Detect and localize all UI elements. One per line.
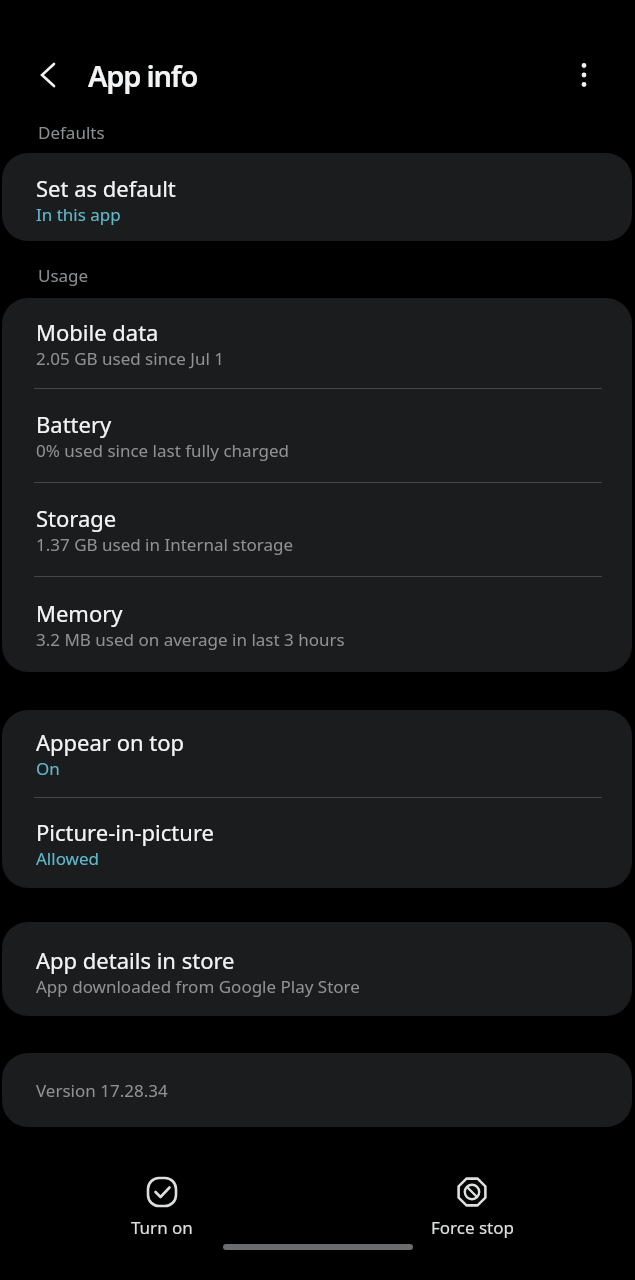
- button[interactable]: Battery: [2, 389, 632, 482]
- staticText: App downloaded from Google Play Store: [36, 975, 360, 998]
- staticText: 3.2 MB used on average in last 3 hours: [36, 628, 345, 651]
- staticText: 1.37 GB used in Internal storage: [36, 533, 294, 556]
- staticText: 2.05 GB used since Jul 1: [36, 347, 224, 370]
- staticText: Battery: [36, 409, 112, 439]
- staticText: Allowed: [36, 847, 99, 870]
- staticText: Appear on top: [36, 727, 185, 757]
- staticText: Storage: [36, 503, 117, 533]
- button[interactable]: [564, 55, 604, 95]
- staticText: Turn on: [131, 1216, 193, 1239]
- staticText: Force stop: [431, 1216, 514, 1239]
- button[interactable]: Turn on: [102, 1163, 222, 1239]
- button[interactable]: Picture-in-picture: [2, 798, 632, 888]
- button[interactable]: [28, 55, 68, 95]
- button[interactable]: Force stop: [412, 1163, 532, 1239]
- staticText: In this app: [36, 203, 121, 226]
- button[interactable]: Set as default: [2, 153, 632, 241]
- button[interactable]: App details in store: [2, 922, 632, 1016]
- button[interactable]: Storage: [2, 483, 632, 576]
- staticText: On: [36, 757, 60, 780]
- staticText: Version 17.28.34: [36, 1079, 168, 1102]
- button[interactable]: Memory: [2, 577, 632, 672]
- staticText: App info: [88, 56, 198, 95]
- button[interactable]: Appear on top: [2, 710, 632, 797]
- staticText: Memory: [36, 598, 123, 628]
- staticText: Defaults: [38, 121, 105, 143]
- button[interactable]: Mobile data: [2, 298, 632, 388]
- staticText: App details in store: [36, 945, 235, 975]
- staticText: 0% used since last fully charged: [36, 439, 289, 462]
- staticText: Set as default: [36, 173, 176, 203]
- staticText: Mobile data: [36, 317, 159, 347]
- staticText: Usage: [38, 264, 89, 286]
- staticText: Picture-in-picture: [36, 817, 214, 847]
